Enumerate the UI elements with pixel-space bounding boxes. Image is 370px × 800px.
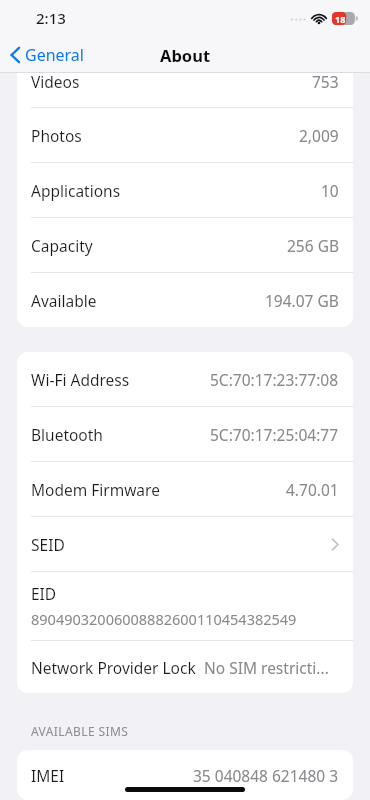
button[interactable]: SEID [17,517,353,571]
staticText: 4.70.01 [286,479,339,500]
staticText: Available [31,290,97,311]
staticText: Videos [31,71,80,92]
button[interactable]: Available [17,273,353,327]
staticText: IMEI [31,765,65,786]
button[interactable]: IMEI [17,750,353,800]
staticText: About [160,44,211,66]
button[interactable]: Applications [17,163,353,217]
staticText: 5C:70:17:23:77:08 [210,369,339,390]
staticText: Wi-Fi Address [31,369,130,390]
staticText: 2:13 [36,8,66,28]
staticText: 2,009 [299,125,339,146]
staticText: 753 [312,71,339,92]
button[interactable]: Network Provider Lock [17,641,353,693]
staticText: Applications [31,180,121,201]
staticText: AVAILABLE SIMS [31,723,129,739]
staticText: Photos [31,125,82,146]
staticText: 89049032006008882600110454382549 [31,609,297,629]
staticText: 5C:70:17:25:04:77 [210,424,339,445]
staticText: 194.07 GB [265,290,339,311]
staticText: Bluetooth [31,424,103,445]
staticText: Modem Firmware [31,479,160,500]
staticText: 18 [335,13,346,25]
staticText: SEID [31,534,65,555]
staticText: Network Provider Lock [31,657,196,678]
button[interactable]: Capacity [17,218,353,272]
button[interactable]: Modem Firmware [17,462,353,516]
button[interactable]: EID [17,572,353,640]
staticText: EID [31,583,57,604]
button[interactable]: Photos [17,108,353,162]
staticText: No SIM restricti... [204,657,329,678]
staticText: General [25,44,84,66]
staticText: 10 [321,180,339,201]
button[interactable]: Videos [17,55,353,107]
button[interactable]: Wi-Fi Address [17,352,353,406]
button[interactable]: General [0,40,92,70]
staticText: 256 GB [287,235,339,256]
other: Home indicator [125,787,245,792]
staticText: 35 040848 621480 3 [193,765,339,786]
button[interactable]: Bluetooth [17,407,353,461]
staticText: Capacity [31,235,93,256]
